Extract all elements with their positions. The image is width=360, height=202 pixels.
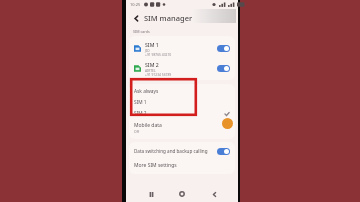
staticText: 10:25 xyxy=(130,2,141,7)
button[interactable]: Toggle xyxy=(217,148,230,155)
staticText: +91 98765 43210 xyxy=(145,52,172,56)
staticText: SIM 2 xyxy=(145,61,159,68)
staticText: Off xyxy=(134,129,139,134)
staticText: Mobile data xyxy=(134,122,162,129)
button[interactable]: Back xyxy=(207,187,221,201)
button[interactable]: Toggle xyxy=(217,65,230,72)
staticText: More SIM settings xyxy=(134,162,177,169)
button[interactable]: Data switching and backup calling xyxy=(129,144,235,158)
staticText: Ask always xyxy=(134,88,159,95)
staticText: JIO xyxy=(145,48,150,52)
staticText: AIRTEL xyxy=(145,68,156,72)
button[interactable]: SIM 1 xyxy=(129,97,235,108)
button[interactable]: SIM 2 xyxy=(129,58,235,78)
staticText: +91 91234 56789 xyxy=(145,72,172,76)
button[interactable]: SIM 2 xyxy=(129,108,235,119)
button[interactable]: Ask always xyxy=(129,86,235,97)
staticText: SIM 1 xyxy=(145,41,159,48)
button[interactable]: Mobile data xyxy=(129,121,235,135)
staticText: SIM cards xyxy=(133,29,150,34)
staticText: SIM 2 xyxy=(134,110,147,117)
button[interactable]: Home xyxy=(175,187,189,201)
button[interactable]: Recents xyxy=(144,187,158,201)
button[interactable]: Toggle xyxy=(217,45,230,52)
button[interactable]: More SIM settings xyxy=(129,158,235,172)
staticText: SIM 1 xyxy=(134,99,147,106)
staticText: Data switching and backup calling xyxy=(134,148,208,154)
button[interactable]: SIM 1 xyxy=(129,38,235,58)
staticText: SIM manager xyxy=(144,13,193,23)
button[interactable]: Back xyxy=(130,12,142,24)
